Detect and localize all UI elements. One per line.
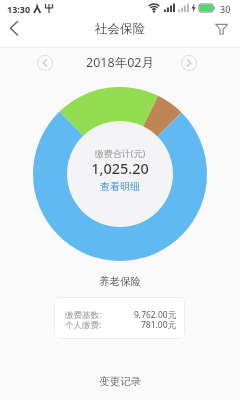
staticText: 30 (220, 3, 231, 15)
button[interactable]: 变更记录 (90, 372, 150, 390)
staticText: 13:30 (7, 3, 31, 15)
staticText: 个人缴费: (65, 319, 102, 329)
staticText: 1,025.20 (0, 158, 240, 178)
button[interactable] (37, 55, 53, 71)
staticText: 2018年02月 (0, 54, 240, 71)
staticText: 781.00元 (141, 319, 177, 329)
staticText: 缴费合计(元) (0, 147, 240, 159)
staticText: 变更记录 (90, 375, 150, 388)
staticText: 缴费基数: (65, 309, 102, 319)
button[interactable] (206, 18, 240, 47)
staticText: 查看明细 (95, 180, 145, 193)
staticText: 9,762.00元 (134, 309, 177, 319)
staticText: 养老保险 (0, 275, 240, 288)
button[interactable] (0, 18, 34, 47)
staticText: 社会保险 (0, 21, 240, 37)
button[interactable] (181, 55, 197, 71)
button[interactable]: 查看明细 (95, 180, 145, 194)
